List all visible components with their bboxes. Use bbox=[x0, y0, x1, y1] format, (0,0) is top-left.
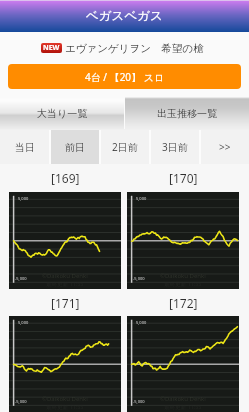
button[interactable]: 2日前 bbox=[101, 130, 149, 164]
staticText: 最終更新 11:55 bbox=[164, 280, 202, 288]
staticText: ©Daikoku Denki bbox=[160, 395, 206, 403]
button[interactable]: 出玉推移一覧 bbox=[125, 97, 249, 129]
staticText: -5,000 bbox=[15, 276, 27, 281]
staticText: [171] bbox=[51, 295, 80, 311]
staticText: ©Daikoku Denki bbox=[42, 395, 88, 403]
staticText: ベガスベガス bbox=[86, 8, 163, 24]
staticText: 前日 bbox=[65, 141, 85, 154]
button[interactable]: >> bbox=[201, 130, 249, 164]
staticText: ©Daikoku Denki bbox=[160, 272, 206, 280]
staticText: [169] bbox=[51, 170, 80, 186]
staticText: 2日前 bbox=[112, 140, 138, 154]
button[interactable]: 5,000 bbox=[127, 192, 239, 289]
staticText: 5,000 bbox=[18, 320, 29, 325]
staticText: >> bbox=[219, 140, 231, 154]
staticText: -5,000 bbox=[15, 399, 27, 404]
staticText: ©Daikoku Denki bbox=[42, 272, 88, 280]
staticText: NEW bbox=[43, 43, 60, 53]
button[interactable]: 5,000 bbox=[127, 316, 239, 412]
staticText: 5,000 bbox=[18, 196, 29, 201]
staticText: 4台 / 【20】 スロ bbox=[85, 70, 165, 84]
button[interactable]: 大当り一覧 bbox=[0, 97, 124, 129]
staticText: 最終更新 11:55 bbox=[46, 403, 84, 411]
button[interactable]: 5,000 bbox=[9, 192, 121, 289]
staticText: 大当り一覧 bbox=[37, 107, 88, 120]
button[interactable]: 3日前 bbox=[151, 130, 199, 164]
button[interactable]: 当日 bbox=[0, 130, 49, 164]
button[interactable]: 前日 bbox=[51, 130, 99, 164]
staticText: 当日 bbox=[15, 141, 35, 154]
staticText: 3日前 bbox=[162, 140, 188, 154]
staticText: エヴァンゲリヲン 希望の槍 bbox=[65, 41, 204, 55]
staticText: 最終更新 11:55 bbox=[46, 280, 84, 288]
staticText: 5,000 bbox=[136, 320, 147, 325]
staticText: 5,000 bbox=[136, 196, 147, 201]
button[interactable]: 5,000 bbox=[9, 316, 121, 412]
staticText: [170] bbox=[169, 170, 198, 186]
staticText: 出玉推移一覧 bbox=[157, 107, 217, 120]
button[interactable]: 4台 / 【20】 スロ bbox=[8, 64, 241, 89]
staticText: -5,000 bbox=[133, 276, 145, 281]
staticText: [172] bbox=[169, 295, 198, 311]
staticText: 最終更新 11:55 bbox=[164, 403, 202, 411]
staticText: -5,000 bbox=[133, 399, 145, 404]
